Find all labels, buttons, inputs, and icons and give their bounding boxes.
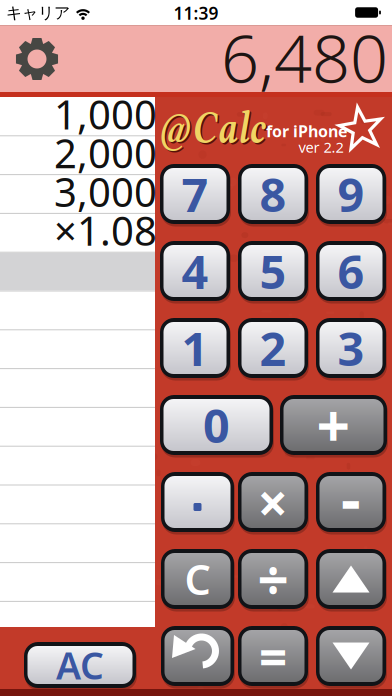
staticText: 4	[181, 240, 208, 302]
button[interactable]: 3	[316, 318, 386, 378]
staticText: ver 2.2	[298, 137, 343, 157]
staticText: @Calc	[142, 103, 281, 156]
button[interactable]: plus	[280, 395, 387, 455]
staticText: 5	[259, 240, 286, 302]
staticText: C	[184, 552, 210, 606]
button[interactable]: scroll down	[316, 626, 386, 686]
button[interactable]: 6	[316, 241, 386, 301]
staticText: 6,480	[221, 13, 388, 101]
staticText: AC	[56, 640, 104, 690]
staticText: 6	[337, 240, 364, 302]
staticText: キャリア	[6, 3, 70, 23]
staticText: 8	[259, 163, 286, 225]
button[interactable]: clear	[161, 549, 234, 609]
button[interactable]: 0	[160, 395, 273, 455]
button[interactable]: 7	[160, 164, 230, 224]
staticText: 0	[203, 394, 230, 456]
staticText: @Calc	[140, 101, 279, 155]
button[interactable]: Settings	[7, 29, 67, 89]
staticText: ÷	[257, 543, 288, 615]
staticText: 7	[181, 163, 208, 225]
staticText: 2,000	[54, 126, 157, 179]
button[interactable]: minus	[316, 472, 386, 532]
staticText: -	[341, 457, 361, 539]
staticText: 3	[337, 317, 364, 379]
staticText: +	[316, 386, 350, 464]
button[interactable]: divide	[238, 549, 308, 609]
staticText: 2	[259, 317, 286, 379]
button[interactable]: 2	[238, 318, 308, 378]
button[interactable]: multiply	[238, 472, 308, 532]
staticText: 3,000	[54, 165, 157, 218]
staticText: ×	[257, 467, 288, 537]
staticText: =	[259, 623, 287, 689]
staticText: 9	[337, 163, 364, 225]
staticText: for iPhone	[266, 120, 348, 142]
button[interactable]: 1	[160, 318, 230, 378]
button[interactable]: decimal point	[161, 472, 234, 532]
button[interactable]: 5	[238, 241, 308, 301]
staticText: 11:39	[173, 1, 218, 24]
staticText: ×1.08	[54, 204, 157, 257]
button[interactable]: 9	[316, 164, 386, 224]
staticText: 1,000	[54, 87, 157, 140]
button[interactable]: all clear	[24, 642, 136, 688]
button[interactable]: 4	[160, 241, 230, 301]
button[interactable]: 8	[238, 164, 308, 224]
staticText: 1	[181, 317, 208, 379]
button[interactable]: undo	[161, 626, 234, 686]
button[interactable]: equals	[238, 626, 308, 686]
button[interactable]: scroll up	[316, 549, 386, 609]
